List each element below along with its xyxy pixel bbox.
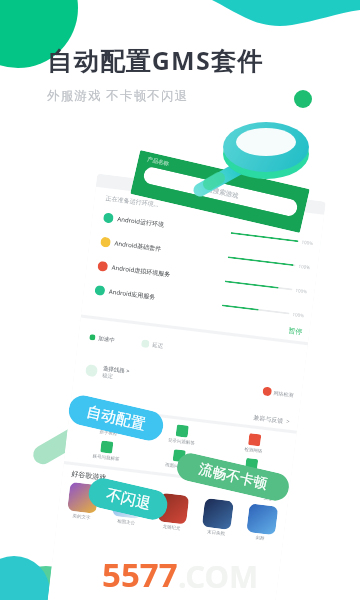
staticText: 新手教程: [99, 429, 118, 437]
staticText: Android虚拟环境服务: [111, 263, 171, 279]
staticText: 外服游戏 不卡顿不闪退: [47, 87, 189, 104]
staticText: 类的文字: [72, 513, 91, 521]
staticText: 自动配置: [84, 402, 147, 434]
staticText: 汉化/语言问题: [236, 471, 265, 480]
staticText: 5577: [102, 552, 178, 597]
staticText: Android基础套件: [114, 239, 162, 253]
staticText: 画面问题解答: [165, 462, 192, 471]
staticText: 末日杀戮: [207, 529, 225, 537]
staticText: Android运行环境: [117, 215, 165, 229]
staticText: Android应用服务: [108, 288, 156, 301]
staticText: 不闪退: [104, 485, 152, 514]
staticText: 100%: [301, 239, 314, 246]
button[interactable]: 不闪退: [86, 475, 170, 523]
button[interactable]: 流畅不卡顿: [174, 450, 292, 503]
staticText: 网络检测: [273, 390, 294, 398]
staticText: 剑舞: [255, 535, 265, 542]
staticText: 自动配置GMS套件: [47, 43, 264, 77]
staticText: 账号问题解答: [92, 453, 120, 463]
staticText: 加速中: [98, 335, 116, 344]
staticText: 稳定: [102, 372, 113, 380]
staticText: 流畅不卡顿: [197, 460, 269, 494]
staticText: 100%: [292, 311, 305, 318]
staticText: 延迟: [152, 342, 164, 350]
staticText: 好谷歌游戏: [71, 469, 107, 482]
other: Search: [193, 110, 317, 206]
staticText: 检测网络: [244, 447, 263, 455]
staticText: 暂停: [288, 326, 303, 336]
button[interactable]: 自动配置: [66, 393, 166, 443]
staticText: 选择线路 >: [102, 364, 130, 375]
staticText: 登录问题解答: [168, 437, 195, 447]
staticText: .COM: [178, 555, 259, 597]
staticText: 更多 >: [263, 493, 280, 503]
staticText: 点击搜索游戏: [199, 184, 239, 200]
staticText: 龙骑纪元: [162, 524, 181, 532]
staticText: 兼容与反馈 >: [253, 413, 291, 426]
staticText: 相国主公: [117, 518, 135, 526]
staticText: 正在准备运行环境...: [105, 194, 159, 209]
staticText: 100%: [295, 287, 308, 294]
staticText: 100%: [298, 263, 311, 270]
staticText: 产品名称: [147, 156, 170, 168]
